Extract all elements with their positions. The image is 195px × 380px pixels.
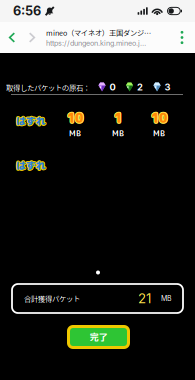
button[interactable]: Back xyxy=(2,22,22,53)
staticText: 10 xyxy=(152,110,168,127)
staticText: はずれ xyxy=(15,158,45,172)
staticText: 10 xyxy=(68,110,84,127)
staticText: 0 xyxy=(109,81,115,93)
staticText: はずれ xyxy=(17,158,47,172)
staticText: はずれ xyxy=(16,159,46,173)
staticText: 10 xyxy=(67,109,83,127)
staticText: 10 xyxy=(68,108,84,126)
staticText: 1 xyxy=(115,110,123,127)
staticText: はずれ xyxy=(17,159,47,173)
staticText: 10 xyxy=(150,110,166,127)
staticText: MB xyxy=(112,128,124,139)
staticText: 10 xyxy=(150,108,166,126)
button[interactable]: mineo（マイネオ）王国ダンジ… xyxy=(46,22,151,53)
staticText: はずれ xyxy=(16,157,46,171)
staticText: 10 xyxy=(67,108,83,126)
staticText: MB xyxy=(153,128,165,139)
staticText: 10 xyxy=(67,110,83,128)
staticText: mineo（マイネオ）王国ダンジ… xyxy=(46,27,151,38)
staticText: 1 xyxy=(113,109,121,127)
staticText: 10 xyxy=(152,108,168,126)
staticText: 1 xyxy=(113,110,121,127)
staticText: 1 xyxy=(113,108,121,126)
button[interactable]: Forward xyxy=(22,22,42,53)
staticText: 合計獲得パケット xyxy=(24,293,80,304)
staticText: MB xyxy=(69,128,81,139)
staticText: 10 xyxy=(68,109,84,127)
staticText: 6:56 xyxy=(13,3,41,19)
staticText: はずれ xyxy=(17,113,47,127)
staticText: https://dungeon.king.mineo.j… xyxy=(46,39,146,48)
staticText: はずれ xyxy=(15,114,45,128)
staticText: 10 xyxy=(150,109,166,127)
staticText: 2 xyxy=(137,81,143,93)
staticText: 1 xyxy=(114,108,122,126)
staticText: 完了 xyxy=(89,330,107,343)
staticText: 1 xyxy=(115,108,123,126)
staticText: はずれ xyxy=(17,114,47,128)
staticText: はずれ xyxy=(16,115,46,129)
staticText: はずれ xyxy=(15,158,45,172)
staticText: はずれ xyxy=(15,115,45,129)
staticText: はずれ xyxy=(15,113,45,127)
staticText: はずれ xyxy=(16,114,46,128)
staticText: 10 xyxy=(151,108,167,126)
staticText: 10 xyxy=(151,109,167,127)
staticText: 10 xyxy=(66,110,82,127)
staticText: はずれ xyxy=(15,159,45,173)
staticText: MB xyxy=(161,294,172,303)
staticText: 10 xyxy=(152,109,168,127)
staticText: 10 xyxy=(66,108,82,126)
staticText: 1 xyxy=(114,109,122,127)
staticText: はずれ xyxy=(16,113,46,127)
staticText: はずれ xyxy=(17,158,47,172)
button[interactable]: 完了 xyxy=(67,325,130,349)
button[interactable]: Menu xyxy=(170,22,194,53)
staticText: 10 xyxy=(151,110,167,128)
staticText: 3 xyxy=(164,81,170,93)
staticText: 21 xyxy=(138,290,151,306)
staticText: はずれ xyxy=(17,115,47,129)
staticText: 取得したパケットの原石： xyxy=(6,82,90,93)
staticText: はずれ xyxy=(16,158,46,172)
staticText: 10 xyxy=(66,109,82,127)
staticText: 1 xyxy=(115,109,123,127)
staticText: 1 xyxy=(114,110,122,128)
